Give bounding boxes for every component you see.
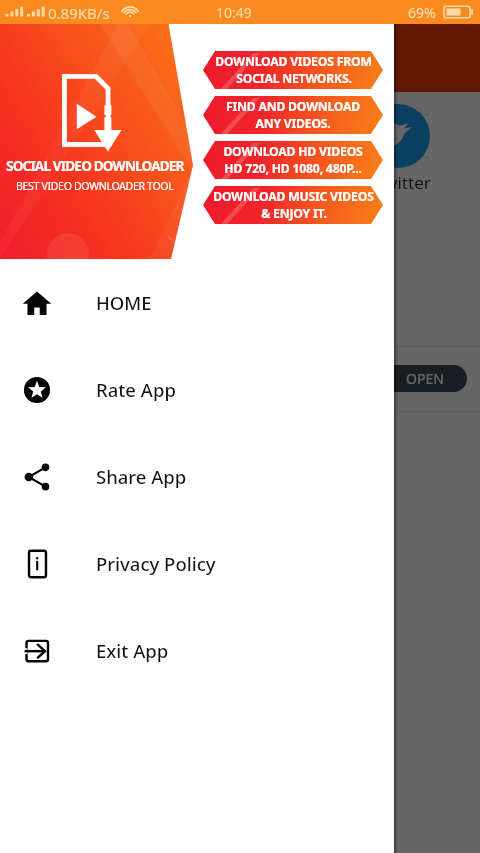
staticText: Privacy Policy — [96, 551, 216, 576]
staticText: SOCIAL NETWORKS. — [236, 70, 352, 87]
button[interactable]: Privacy Policy — [0, 520, 394, 607]
staticText: DOWNLOAD MUSIC VIDEOS — [213, 188, 374, 205]
button[interactable]: Rate App — [0, 346, 394, 433]
staticText: DOWNLOAD HD VIDEOS — [223, 143, 363, 160]
staticText: Twitter — [375, 171, 431, 194]
staticText: Rate App — [96, 377, 176, 402]
staticText: 10:49 — [216, 3, 252, 22]
button[interactable]: Share App — [0, 433, 394, 520]
staticText: ANY VIDEOS. — [255, 115, 331, 132]
staticText: Exit App — [96, 638, 169, 663]
staticText: 69% — [408, 3, 436, 22]
button[interactable]: HOME — [0, 259, 394, 346]
staticText: FIND AND DOWNLOAD — [226, 98, 360, 115]
staticText: & ENJOY IT. — [261, 205, 327, 222]
staticText: Share App — [96, 464, 187, 489]
staticText: OPEN — [406, 369, 444, 388]
staticText: DOWNLOAD VIDEOS FROM — [215, 53, 372, 70]
staticText: HD 720, HD 1080, 480P... — [224, 160, 362, 177]
staticText: SOCIAL VIDEO DOWNLOADER — [6, 156, 184, 175]
button[interactable]: OPEN — [383, 365, 467, 392]
staticText: BEST VIDEO DOWNLOADER TOOL — [16, 179, 174, 193]
button[interactable]: Exit App — [0, 607, 394, 694]
staticText: 0.89KB/s — [48, 3, 110, 23]
staticText: HOME — [96, 290, 152, 315]
